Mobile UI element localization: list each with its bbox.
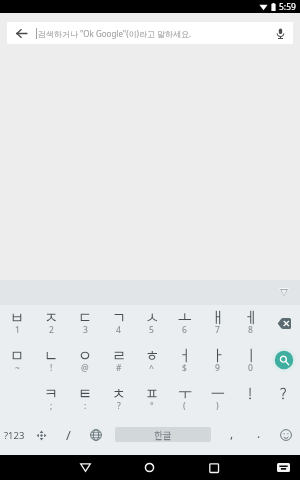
button[interactable]: ?123 (0, 417, 28, 453)
button[interactable]: ㅅ (135, 305, 168, 343)
staticText: ! (248, 382, 253, 404)
staticText: 1 (15, 324, 20, 336)
button[interactable]: ㅊ (102, 381, 135, 419)
button[interactable]: ㄷ (68, 305, 102, 343)
staticText: 한글 (154, 428, 172, 442)
button[interactable]: ㅋ (34, 381, 68, 419)
staticText: 5 (149, 324, 154, 336)
staticText: @ (81, 362, 89, 374)
button[interactable]: Home (126, 455, 172, 480)
staticText: ㅍ (145, 382, 159, 404)
staticText: / (66, 426, 71, 444)
staticText: ㅏ (211, 344, 225, 366)
staticText: 7 (215, 324, 220, 336)
button[interactable]: Hide keyboard (267, 280, 300, 305)
staticText: 2 (49, 324, 54, 336)
staticText: ㅐ (211, 306, 225, 328)
button[interactable]: Hide keyboard (266, 455, 300, 480)
staticText: , (230, 425, 234, 441)
staticText: 3 (83, 324, 88, 336)
button[interactable]: ㅇ (68, 343, 102, 381)
button[interactable]: Move cursor (28, 417, 55, 453)
staticText: # (116, 362, 122, 374)
staticText: . (257, 425, 261, 441)
staticText: ?123 (4, 429, 25, 442)
staticText: ㅔ (244, 306, 258, 328)
button[interactable]: ㄹ (102, 343, 135, 381)
button[interactable]: Back (7, 22, 36, 44)
staticText: 0 (248, 362, 253, 374)
button[interactable]: ㅔ (234, 305, 267, 343)
button[interactable]: ㄴ (34, 343, 68, 381)
staticText: ; (50, 400, 53, 412)
button[interactable]: ㅎ (135, 343, 168, 381)
staticText: 6 (182, 324, 187, 336)
staticText: ㄷ (78, 306, 92, 328)
staticText: ㅡ (211, 382, 225, 404)
staticText: 검색하거나 "Ok Google"(이)라고 말하세요. (38, 28, 192, 39)
staticText: ) (216, 400, 219, 412)
button[interactable]: ㅍ (135, 381, 168, 419)
button[interactable]: ! (234, 381, 267, 419)
button[interactable]: ㅈ (34, 305, 68, 343)
staticText: ㅌ (78, 382, 92, 404)
button[interactable]: ㅁ (0, 343, 34, 381)
button[interactable]: ㅗ (168, 305, 201, 343)
staticText: : (84, 400, 87, 412)
button[interactable]: . (246, 417, 272, 453)
button[interactable]: ㅣ (234, 343, 267, 381)
staticText: ㅊ (112, 382, 126, 404)
staticText: ㄴ (44, 344, 58, 366)
button[interactable]: ㄱ (102, 305, 135, 343)
button[interactable]: ㅜ (168, 381, 201, 419)
staticText: ° (150, 400, 154, 412)
staticText: ㅓ (178, 344, 192, 366)
staticText: ㅜ (178, 382, 192, 404)
button[interactable]: , (219, 417, 245, 453)
button[interactable]: ㅏ (201, 343, 234, 381)
button[interactable]: Back (62, 455, 108, 480)
button[interactable]: Emoji (272, 417, 300, 453)
staticText: ㅈ (44, 306, 58, 328)
staticText: 5:59 (279, 1, 296, 13)
button[interactable]: ㅌ (68, 381, 102, 419)
button[interactable]: Recent apps (191, 455, 237, 480)
staticText: ㅣ (244, 344, 258, 366)
button[interactable]: / (55, 417, 82, 453)
staticText: ㄹ (112, 344, 126, 366)
staticText: 8 (248, 324, 253, 336)
staticText: ! (50, 362, 53, 374)
button[interactable]: Voice search (267, 22, 293, 44)
staticText: ㅗ (178, 306, 192, 328)
button[interactable]: ㅐ (201, 305, 234, 343)
staticText: ㅋ (44, 382, 58, 404)
staticText: ( (183, 400, 186, 412)
staticText: ㅁ (10, 344, 24, 366)
staticText: ㄱ (112, 306, 126, 328)
button[interactable]: ㅡ (201, 381, 234, 419)
button[interactable]: ㅓ (168, 343, 201, 381)
button[interactable]: Search (267, 343, 300, 381)
staticText: 9 (215, 362, 220, 374)
staticText: ㅂ (10, 306, 24, 328)
button[interactable]: 한글 (115, 427, 211, 442)
staticText: 4 (116, 324, 121, 336)
staticText: ㅎ (145, 344, 159, 366)
button[interactable]: Change language (82, 417, 110, 453)
staticText: $ (182, 362, 187, 374)
staticText: ? (280, 382, 287, 404)
staticText: ? (117, 400, 121, 412)
button[interactable]: Backspace (267, 305, 300, 343)
staticText: ㅅ (145, 306, 159, 328)
staticText: ~ (15, 362, 20, 374)
button[interactable]: ㅂ (0, 305, 34, 343)
staticText: ^ (149, 362, 154, 374)
button[interactable]: ? (267, 381, 300, 419)
staticText: ㅇ (78, 344, 92, 366)
